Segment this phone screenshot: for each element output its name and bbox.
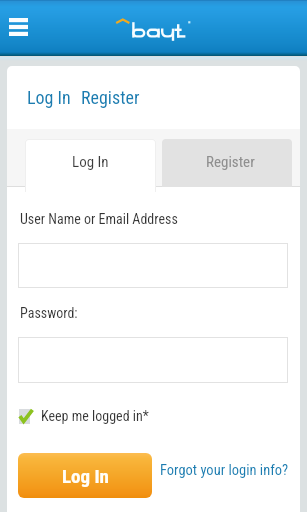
button[interactable]: Log In [27, 87, 71, 108]
staticText: User Name or Email Address [20, 211, 178, 227]
button[interactable]: Log In [18, 453, 152, 498]
staticText: Log In [62, 465, 109, 487]
button[interactable]: Open navigation menu [9, 18, 28, 36]
button[interactable] [18, 337, 288, 383]
other: Bayt [114, 18, 188, 42]
staticText: Log In [72, 153, 109, 171]
staticText: Keep me logged in* [41, 408, 149, 424]
button[interactable]: Register [81, 87, 140, 108]
button[interactable] [18, 243, 288, 288]
button[interactable]: Keep me logged in* [19, 408, 149, 424]
staticText: Password: [20, 305, 78, 321]
button[interactable]: Log In [25, 139, 156, 192]
button[interactable]: Register [162, 139, 292, 187]
button[interactable]: Forgot your login info? [160, 462, 289, 479]
staticText: Register [206, 153, 255, 171]
